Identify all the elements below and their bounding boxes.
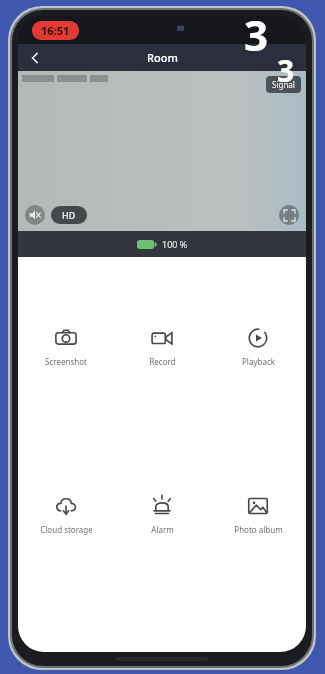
button[interactable]: Photo album <box>210 491 306 539</box>
staticText: Record <box>149 356 176 367</box>
button[interactable]: Signal <box>266 76 301 93</box>
button[interactable]: Back <box>22 45 48 71</box>
button[interactable]: HD <box>51 206 87 224</box>
button[interactable]: Record <box>114 323 210 371</box>
staticText: Room <box>147 50 178 65</box>
button[interactable]: Playback <box>210 323 306 371</box>
button[interactable]: Cloud storage <box>18 491 114 539</box>
staticText: Signal <box>272 79 295 90</box>
staticText: 16:51 <box>41 23 70 38</box>
button[interactable]: Mute <box>25 205 45 225</box>
staticText: 3 <box>277 50 295 91</box>
staticText: Alarm <box>151 524 174 535</box>
staticText: Screenshot <box>45 356 87 367</box>
button[interactable]: Fullscreen <box>279 205 299 225</box>
button[interactable]: Alarm <box>114 491 210 539</box>
button[interactable]: Screenshot <box>18 323 114 371</box>
staticText: Photo album <box>234 524 283 535</box>
staticText: HD <box>62 209 76 221</box>
staticText: 3 <box>244 6 269 63</box>
staticText: 100 % <box>162 238 188 250</box>
staticText: Cloud storage <box>40 524 93 535</box>
staticText: Playback <box>242 356 275 367</box>
